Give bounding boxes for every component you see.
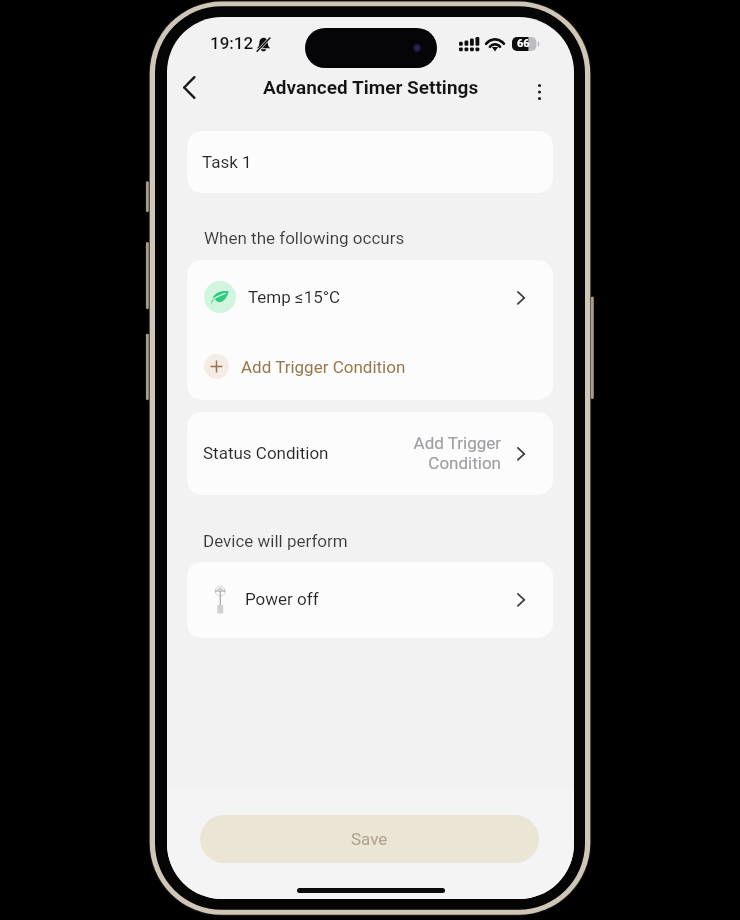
staticText: 19:12 — [210, 33, 254, 53]
staticText: 66 — [517, 37, 530, 50]
staticText: When the following occurs — [204, 228, 405, 248]
button[interactable]: Temp ≤15°C — [187, 260, 553, 334]
staticText: Save — [351, 829, 388, 849]
button[interactable]: Add Trigger Condition — [187, 333, 553, 400]
staticText: Add Trigger Condition — [413, 433, 501, 473]
button[interactable]: More options — [520, 67, 560, 107]
button[interactable]: Power off — [187, 562, 553, 638]
staticText: Temp ≤15°C — [248, 287, 341, 307]
button[interactable]: Status Condition — [187, 412, 553, 495]
button[interactable]: Save — [200, 815, 539, 863]
staticText: Device will perform — [203, 531, 348, 551]
button[interactable]: Back — [169, 67, 209, 107]
staticText: Task 1 — [202, 152, 252, 172]
staticText: Advanced Timer Settings — [263, 76, 479, 98]
staticText: Add Trigger Condition — [241, 357, 406, 377]
staticText: Power off — [245, 589, 319, 609]
staticText: Status Condition — [203, 443, 329, 463]
